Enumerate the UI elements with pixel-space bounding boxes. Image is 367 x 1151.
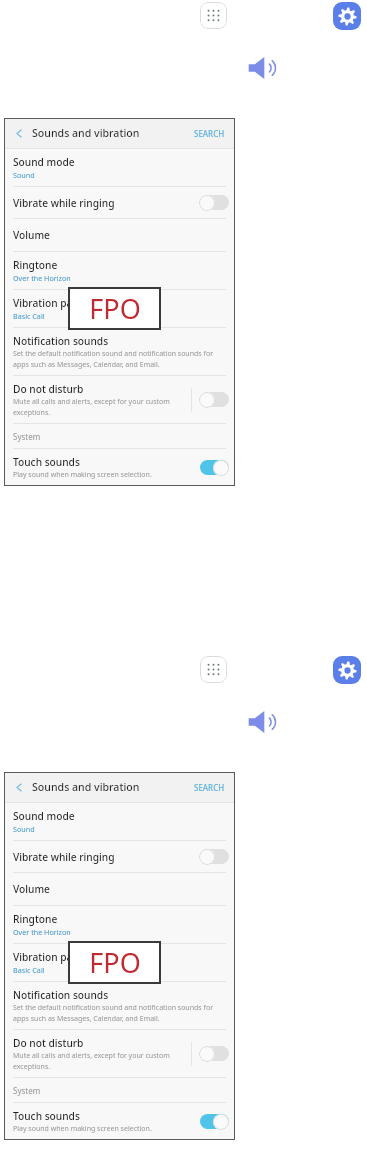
button[interactable]: Settings bbox=[333, 656, 361, 684]
staticText: Sounds and vibration bbox=[32, 780, 192, 794]
staticText: Over the Horizon bbox=[13, 927, 71, 937]
staticText: SEARCH bbox=[194, 128, 225, 139]
staticText: Set the default notification sound and n… bbox=[13, 349, 229, 369]
button[interactable]: SEARCH bbox=[192, 124, 227, 143]
button[interactable]: Do not disturb bbox=[4, 1030, 235, 1077]
button[interactable]: On bbox=[199, 1113, 229, 1130]
button[interactable]: Vibrate while ringing bbox=[4, 841, 235, 872]
staticText: Sound mode bbox=[13, 809, 75, 823]
staticText: Vibration pattern bbox=[13, 296, 97, 310]
button[interactable]: Back bbox=[12, 126, 26, 140]
button[interactable]: Sound mode bbox=[4, 149, 235, 186]
staticText: Notification sounds bbox=[13, 334, 109, 348]
staticText: Sound mode bbox=[13, 155, 75, 169]
button[interactable]: Vibrate while ringing bbox=[4, 187, 235, 218]
button[interactable]: On bbox=[199, 459, 229, 476]
staticText: Set the default notification sound and n… bbox=[13, 1003, 229, 1023]
button[interactable]: Volume bbox=[248, 55, 282, 81]
button[interactable]: Off bbox=[199, 194, 229, 211]
button[interactable]: Off bbox=[199, 1045, 229, 1062]
staticText: Vibrate while ringing bbox=[13, 196, 115, 210]
button[interactable]: Ringtone bbox=[4, 906, 235, 943]
button[interactable]: Off bbox=[199, 391, 229, 408]
button[interactable]: SEARCH bbox=[192, 778, 227, 797]
staticText: Do not disturb bbox=[13, 1036, 84, 1050]
button[interactable]: Notification sounds bbox=[4, 982, 235, 1029]
staticText: Volume bbox=[13, 228, 50, 242]
button[interactable]: Ringtone bbox=[4, 252, 235, 289]
button[interactable]: Vibration pattern bbox=[4, 290, 235, 327]
button[interactable]: Apps bbox=[200, 656, 227, 683]
button[interactable]: Touch sounds bbox=[4, 449, 235, 486]
staticText: Touch sounds bbox=[13, 455, 80, 469]
staticText: Mute all calls and alerts, except for yo… bbox=[13, 1051, 191, 1071]
button[interactable]: Off bbox=[199, 848, 229, 865]
staticText: System bbox=[13, 431, 41, 442]
staticText: Ringtone bbox=[13, 258, 58, 272]
staticText: Sounds and vibration bbox=[32, 126, 192, 140]
staticText: Over the Horizon bbox=[13, 273, 71, 283]
staticText: FPO bbox=[89, 944, 141, 981]
staticText: Do not disturb bbox=[13, 382, 84, 396]
staticText: Play sound when making screen selection. bbox=[13, 1124, 152, 1134]
button[interactable]: Apps bbox=[200, 2, 227, 29]
button[interactable]: Vibration pattern bbox=[4, 944, 235, 981]
button[interactable]: Sound mode bbox=[4, 803, 235, 840]
staticText: Basic Call bbox=[13, 965, 45, 975]
staticText: Notification sounds bbox=[13, 988, 109, 1002]
button[interactable]: Do not disturb bbox=[4, 376, 235, 423]
staticText: Sound bbox=[13, 170, 35, 180]
staticText: Ringtone bbox=[13, 912, 58, 926]
staticText: FPO bbox=[89, 290, 141, 327]
staticText: Play sound when making screen selection. bbox=[13, 470, 152, 480]
staticText: Volume bbox=[13, 882, 50, 896]
button[interactable]: Touch sounds bbox=[4, 1103, 235, 1140]
staticText: Touch sounds bbox=[13, 1109, 80, 1123]
staticText: Vibration pattern bbox=[13, 950, 97, 964]
button[interactable]: Volume bbox=[248, 709, 282, 735]
staticText: SEARCH bbox=[194, 782, 225, 793]
button[interactable]: Notification sounds bbox=[4, 328, 235, 375]
button[interactable]: Settings bbox=[333, 2, 361, 30]
staticText: Basic Call bbox=[13, 311, 45, 321]
button[interactable]: Back bbox=[12, 780, 26, 794]
staticText: System bbox=[13, 1085, 41, 1096]
button[interactable]: Volume bbox=[4, 219, 235, 251]
staticText: Sound bbox=[13, 824, 35, 834]
staticText: Vibrate while ringing bbox=[13, 850, 115, 864]
staticText: Mute all calls and alerts, except for yo… bbox=[13, 397, 191, 417]
button[interactable]: Volume bbox=[4, 873, 235, 905]
